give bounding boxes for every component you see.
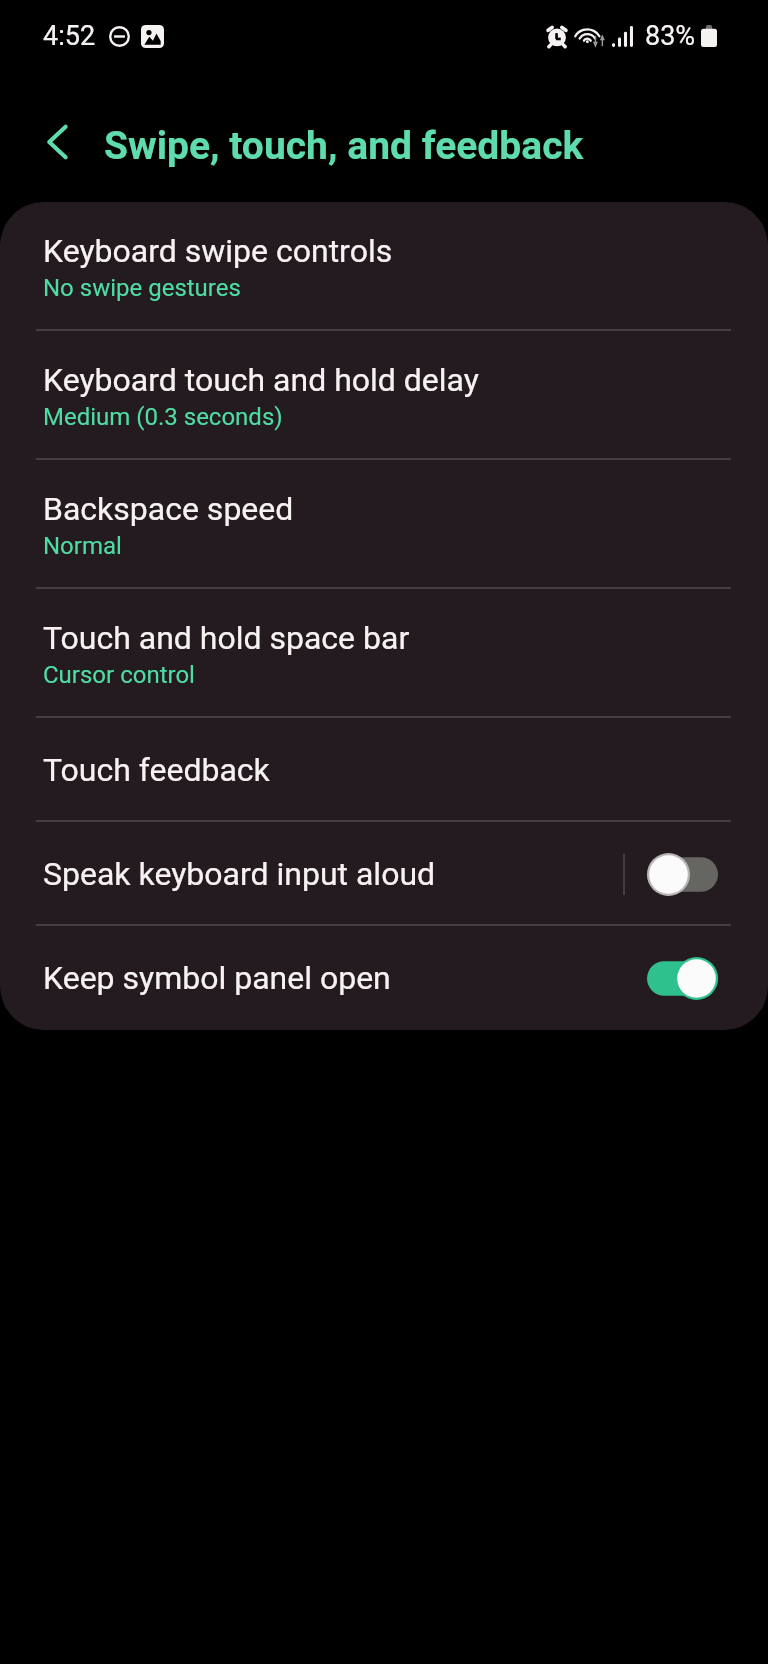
staticText: No swipe gestures [43,274,241,302]
staticText: Keyboard swipe controls [43,232,393,270]
staticText: Speak keyboard input aloud [43,855,623,893]
staticText: Cursor control [43,661,195,689]
staticText: Backspace speed [43,490,294,528]
staticText: Normal [43,532,122,560]
button[interactable]: Speak keyboard input aloud [0,822,768,926]
button[interactable]: Toggle on [647,957,718,1000]
staticText: Medium (0.3 seconds) [43,403,283,431]
staticText: 83% [645,20,696,52]
button[interactable]: Backspace speed [0,460,768,589]
staticText: Swipe, touch, and feedback [104,123,584,169]
staticText: Touch feedback [43,751,270,789]
button[interactable]: Keyboard swipe controls [0,202,768,331]
button[interactable]: Toggle off [647,853,718,896]
button[interactable]: Keep symbol panel open [0,926,768,1030]
staticText: Keyboard touch and hold delay [43,361,479,399]
button[interactable]: Touch feedback [0,718,768,822]
staticText: Touch and hold space bar [43,619,410,657]
button[interactable]: Keyboard touch and hold delay [0,331,768,460]
staticText: Keep symbol panel open [43,959,647,997]
button[interactable]: Back [26,110,90,174]
button[interactable]: Touch and hold space bar [0,589,768,718]
staticText: 4:52 [43,20,96,52]
